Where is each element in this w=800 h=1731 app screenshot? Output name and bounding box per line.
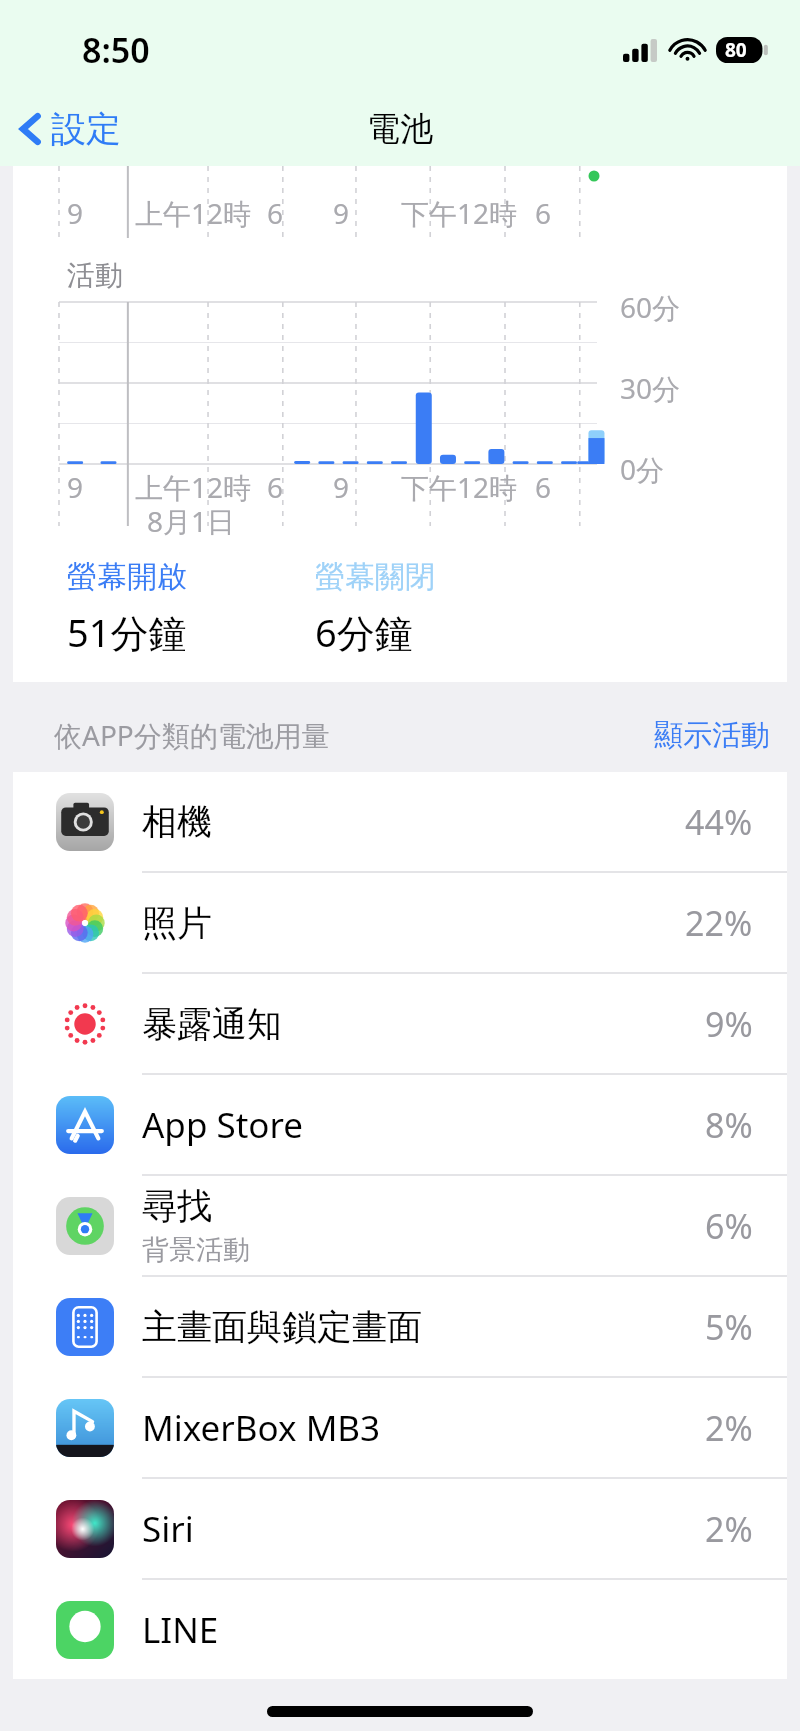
staticText: 80	[725, 37, 747, 63]
staticText: 螢幕關閉	[315, 558, 435, 596]
button[interactable]: findmy	[13, 1176, 787, 1275]
staticText: 30分	[620, 369, 681, 407]
staticText: 60分	[620, 288, 681, 326]
staticText: 背景活動	[142, 1233, 250, 1267]
staticText: 6	[535, 468, 552, 506]
staticText: 活動	[67, 258, 123, 293]
button[interactable]: 設定	[12, 101, 129, 157]
button[interactable]: exposure	[13, 974, 787, 1073]
staticText: 8月1日	[147, 502, 236, 540]
other: line	[56, 1601, 114, 1659]
staticText: Siri	[142, 1505, 194, 1553]
staticText: 9	[67, 468, 84, 506]
staticText: LINE	[142, 1606, 219, 1654]
staticText: 6%	[705, 1203, 753, 1249]
staticText: 6	[267, 194, 284, 232]
staticText: 9	[333, 468, 350, 506]
staticText: 8:50	[82, 27, 150, 73]
staticText: 51分鐘	[67, 606, 187, 658]
other: home	[56, 1298, 114, 1356]
staticText: 8%	[705, 1102, 753, 1148]
staticText: 螢幕開啟	[67, 558, 187, 596]
other: siri	[56, 1500, 114, 1558]
staticText: 下午12時	[401, 468, 518, 506]
staticText: 2%	[705, 1506, 753, 1552]
staticText: 上午12時	[135, 468, 252, 506]
staticText: 依APP分類的電池用量	[54, 716, 654, 754]
button[interactable]: siri	[13, 1479, 787, 1578]
other: appstore	[56, 1096, 114, 1154]
button[interactable]: 顯示活動	[654, 717, 770, 754]
staticText: MixerBox MB3	[142, 1404, 381, 1452]
button[interactable]: photos	[13, 873, 787, 972]
other: exposure	[56, 995, 114, 1053]
staticText: 9	[333, 194, 350, 232]
staticText: 6分鐘	[315, 606, 413, 658]
staticText: 22%	[685, 900, 753, 946]
staticText: 照片	[142, 901, 212, 945]
staticText: 主畫面與鎖定畫面	[142, 1305, 422, 1349]
button[interactable]: appstore	[13, 1075, 787, 1174]
staticText: 5%	[705, 1304, 753, 1350]
button[interactable]: line	[13, 1580, 787, 1679]
staticText: 2%	[705, 1405, 753, 1451]
other: camera	[56, 793, 114, 851]
staticText: 6	[267, 468, 284, 506]
other: mixerbox	[56, 1399, 114, 1457]
staticText: 尋找	[142, 1184, 212, 1228]
staticText: 0分	[620, 450, 665, 488]
staticText: 44%	[685, 799, 753, 845]
staticText: 9	[67, 194, 84, 232]
staticText: 相機	[142, 800, 212, 844]
staticText: 9%	[705, 1001, 753, 1047]
staticText: 上午12時	[135, 194, 252, 232]
other: photos	[56, 894, 114, 952]
other: findmy	[56, 1197, 114, 1255]
staticText: 暴露通知	[142, 1002, 282, 1046]
button[interactable]: mixerbox	[13, 1378, 787, 1477]
staticText: 電池	[367, 108, 433, 150]
staticText: 下午12時	[401, 194, 518, 232]
staticText: 設定	[51, 107, 121, 151]
staticText: App Store	[142, 1101, 304, 1149]
staticText: 6	[535, 194, 552, 232]
button[interactable]: camera	[13, 772, 787, 871]
button[interactable]: home	[13, 1277, 787, 1376]
